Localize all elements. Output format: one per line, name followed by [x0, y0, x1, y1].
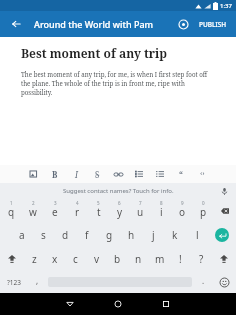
button[interactable]: b: [107, 247, 128, 271]
button[interactable]: Comma: [28, 271, 46, 293]
staticText: ?: [199, 252, 204, 266]
button[interactable]: s: [32, 223, 54, 247]
button[interactable]: Backspace: [214, 198, 236, 223]
staticText: g: [106, 228, 113, 242]
staticText: 9: [181, 200, 184, 206]
staticText: j: [152, 228, 155, 242]
button[interactable]: a: [11, 223, 32, 247]
button[interactable]: Period: [194, 271, 212, 293]
staticText: v: [94, 252, 100, 266]
staticText: i: [160, 205, 163, 219]
button[interactable]: 4: [66, 198, 88, 223]
staticText: 4: [76, 200, 79, 206]
button[interactable]: n: [128, 247, 149, 271]
button[interactable]: Back: [55, 293, 85, 315]
staticText: s: [41, 228, 46, 242]
staticText: k: [172, 228, 178, 242]
button[interactable]: Italic: [68, 166, 84, 182]
button[interactable]: ?123: [0, 271, 28, 293]
button[interactable]: g: [98, 223, 120, 247]
button[interactable]: Voice input: [218, 185, 230, 197]
staticText: 1:37: [220, 2, 232, 10]
staticText: 2: [32, 200, 35, 206]
staticText: The best moment of any trip, for me, is …: [21, 70, 215, 97]
button[interactable]: Back: [6, 14, 26, 34]
button[interactable]: PUBLISH: [196, 17, 230, 32]
button[interactable]: ?: [191, 247, 212, 271]
staticText: p: [200, 205, 207, 219]
staticText: f: [85, 228, 89, 242]
staticText: !: [179, 252, 182, 266]
button[interactable]: 8: [151, 198, 172, 223]
staticText: q: [8, 205, 15, 219]
staticText: 0: [202, 200, 205, 206]
staticText: I: [75, 169, 78, 180]
button[interactable]: x: [44, 247, 65, 271]
button[interactable]: k: [164, 223, 186, 247]
button[interactable]: Numbered list: [152, 166, 168, 182]
staticText: x: [52, 252, 58, 266]
button[interactable]: Insert image: [26, 166, 42, 182]
button[interactable]: Recents: [151, 293, 181, 315]
staticText: y: [117, 205, 123, 219]
staticText: 8: [160, 200, 163, 206]
staticText: u: [137, 205, 144, 219]
button[interactable]: f: [76, 223, 98, 247]
staticText: Best moment of any trip: [21, 45, 168, 61]
button[interactable]: Strikethrough: [89, 166, 105, 182]
button[interactable]: Bold: [47, 166, 63, 182]
button[interactable]: l: [186, 223, 208, 247]
staticText: ‹›: [200, 169, 205, 179]
button[interactable]: h: [120, 223, 142, 247]
staticText: z: [32, 252, 37, 266]
button[interactable]: 7: [130, 198, 151, 223]
staticText: a: [19, 228, 25, 242]
staticText: ,: [36, 275, 39, 286]
button[interactable]: 6: [109, 198, 130, 223]
staticText: 7: [139, 200, 142, 206]
staticText: 6: [118, 200, 121, 206]
button[interactable]: 3: [44, 198, 66, 223]
button[interactable]: z: [24, 247, 44, 271]
staticText: 3: [54, 200, 57, 206]
staticText: 5: [97, 200, 100, 206]
button[interactable]: Shift: [0, 247, 24, 271]
staticText: 1: [10, 200, 13, 206]
button[interactable]: Home: [103, 293, 133, 315]
staticText: c: [73, 252, 78, 266]
button[interactable]: Bulleted list: [131, 166, 147, 182]
staticText: r: [75, 205, 80, 219]
button[interactable]: 0: [193, 198, 214, 223]
button[interactable]: Link: [110, 166, 126, 182]
staticText: n: [135, 252, 142, 266]
staticText: h: [128, 228, 135, 242]
staticText: Suggest contact names? Touch for info.: [63, 187, 174, 195]
staticText: d: [62, 228, 69, 242]
button[interactable]: Settings: [174, 15, 192, 33]
button[interactable]: m: [149, 247, 170, 271]
button[interactable]: Shift: [212, 247, 236, 271]
staticText: .: [202, 275, 205, 286]
staticText: l: [196, 228, 199, 242]
button[interactable]: c: [65, 247, 86, 271]
button[interactable]: 9: [172, 198, 193, 223]
button[interactable]: Emoji: [212, 271, 236, 293]
button[interactable]: Code: [194, 166, 210, 182]
button[interactable]: 2: [22, 198, 44, 223]
staticText: e: [52, 205, 58, 219]
staticText: S: [95, 169, 100, 180]
button[interactable]: Quote: [173, 166, 189, 182]
button[interactable]: 5: [88, 198, 109, 223]
button[interactable]: d: [54, 223, 76, 247]
button[interactable]: Enter: [208, 223, 236, 247]
button[interactable]: 1: [0, 198, 22, 223]
staticText: PUBLISH: [199, 20, 227, 29]
staticText: o: [179, 205, 186, 219]
button[interactable]: j: [142, 223, 164, 247]
staticText: Around the World with Pam: [34, 18, 154, 30]
button[interactable]: v: [86, 247, 107, 271]
staticText: ?123: [7, 278, 21, 287]
button[interactable]: !: [170, 247, 191, 271]
staticText: m: [155, 252, 165, 266]
